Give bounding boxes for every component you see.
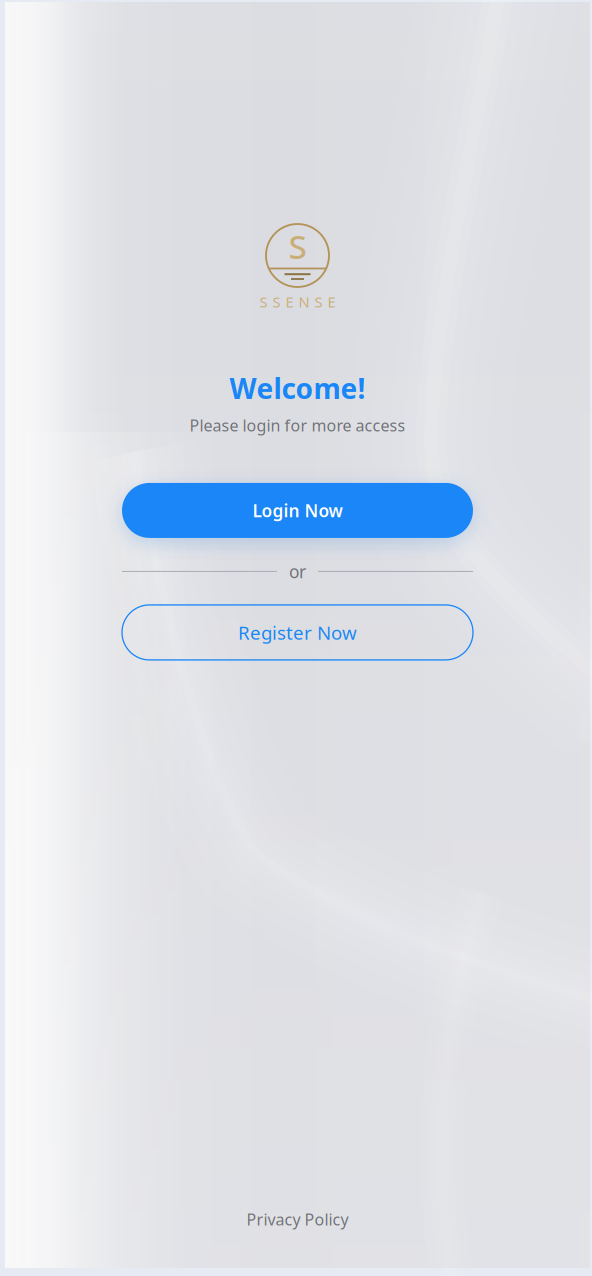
button[interactable]: Register Now <box>122 605 473 660</box>
button[interactable]: Login Now <box>122 483 473 538</box>
staticText: or <box>289 560 306 583</box>
staticText: Register Now <box>238 620 357 645</box>
staticText: Privacy Policy <box>246 1209 348 1230</box>
staticText: Please login for more access <box>189 415 405 436</box>
staticText: Login Now <box>252 499 342 522</box>
button[interactable]: Privacy Policy <box>246 1209 348 1230</box>
staticText: SSENSE <box>259 292 335 311</box>
staticText: Welcome! <box>229 369 365 407</box>
staticText: S <box>288 224 306 268</box>
